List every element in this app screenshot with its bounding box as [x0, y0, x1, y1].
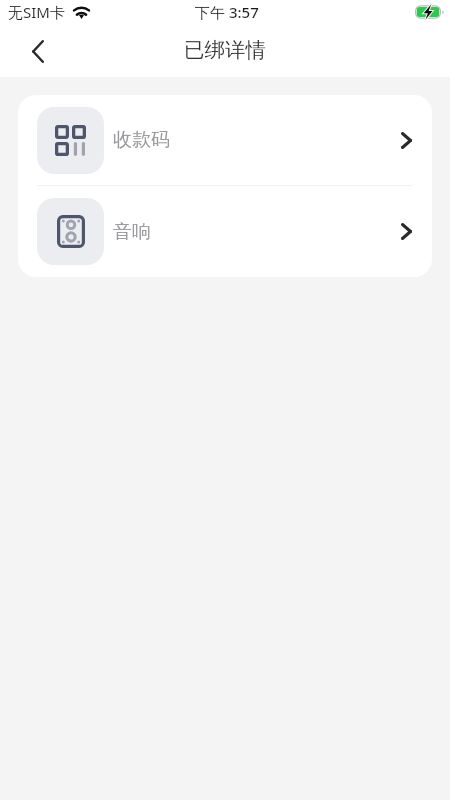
button[interactable]: 收款码: [18, 95, 432, 185]
staticText: 下午 3:57: [195, 2, 259, 22]
staticText: 无SIM卡: [8, 2, 65, 22]
staticText: 收款码: [113, 128, 170, 152]
staticText: 已绑详情: [184, 37, 266, 63]
staticText: 音响: [113, 220, 151, 244]
button[interactable]: Back: [14, 27, 62, 75]
button[interactable]: 音响: [18, 186, 432, 277]
